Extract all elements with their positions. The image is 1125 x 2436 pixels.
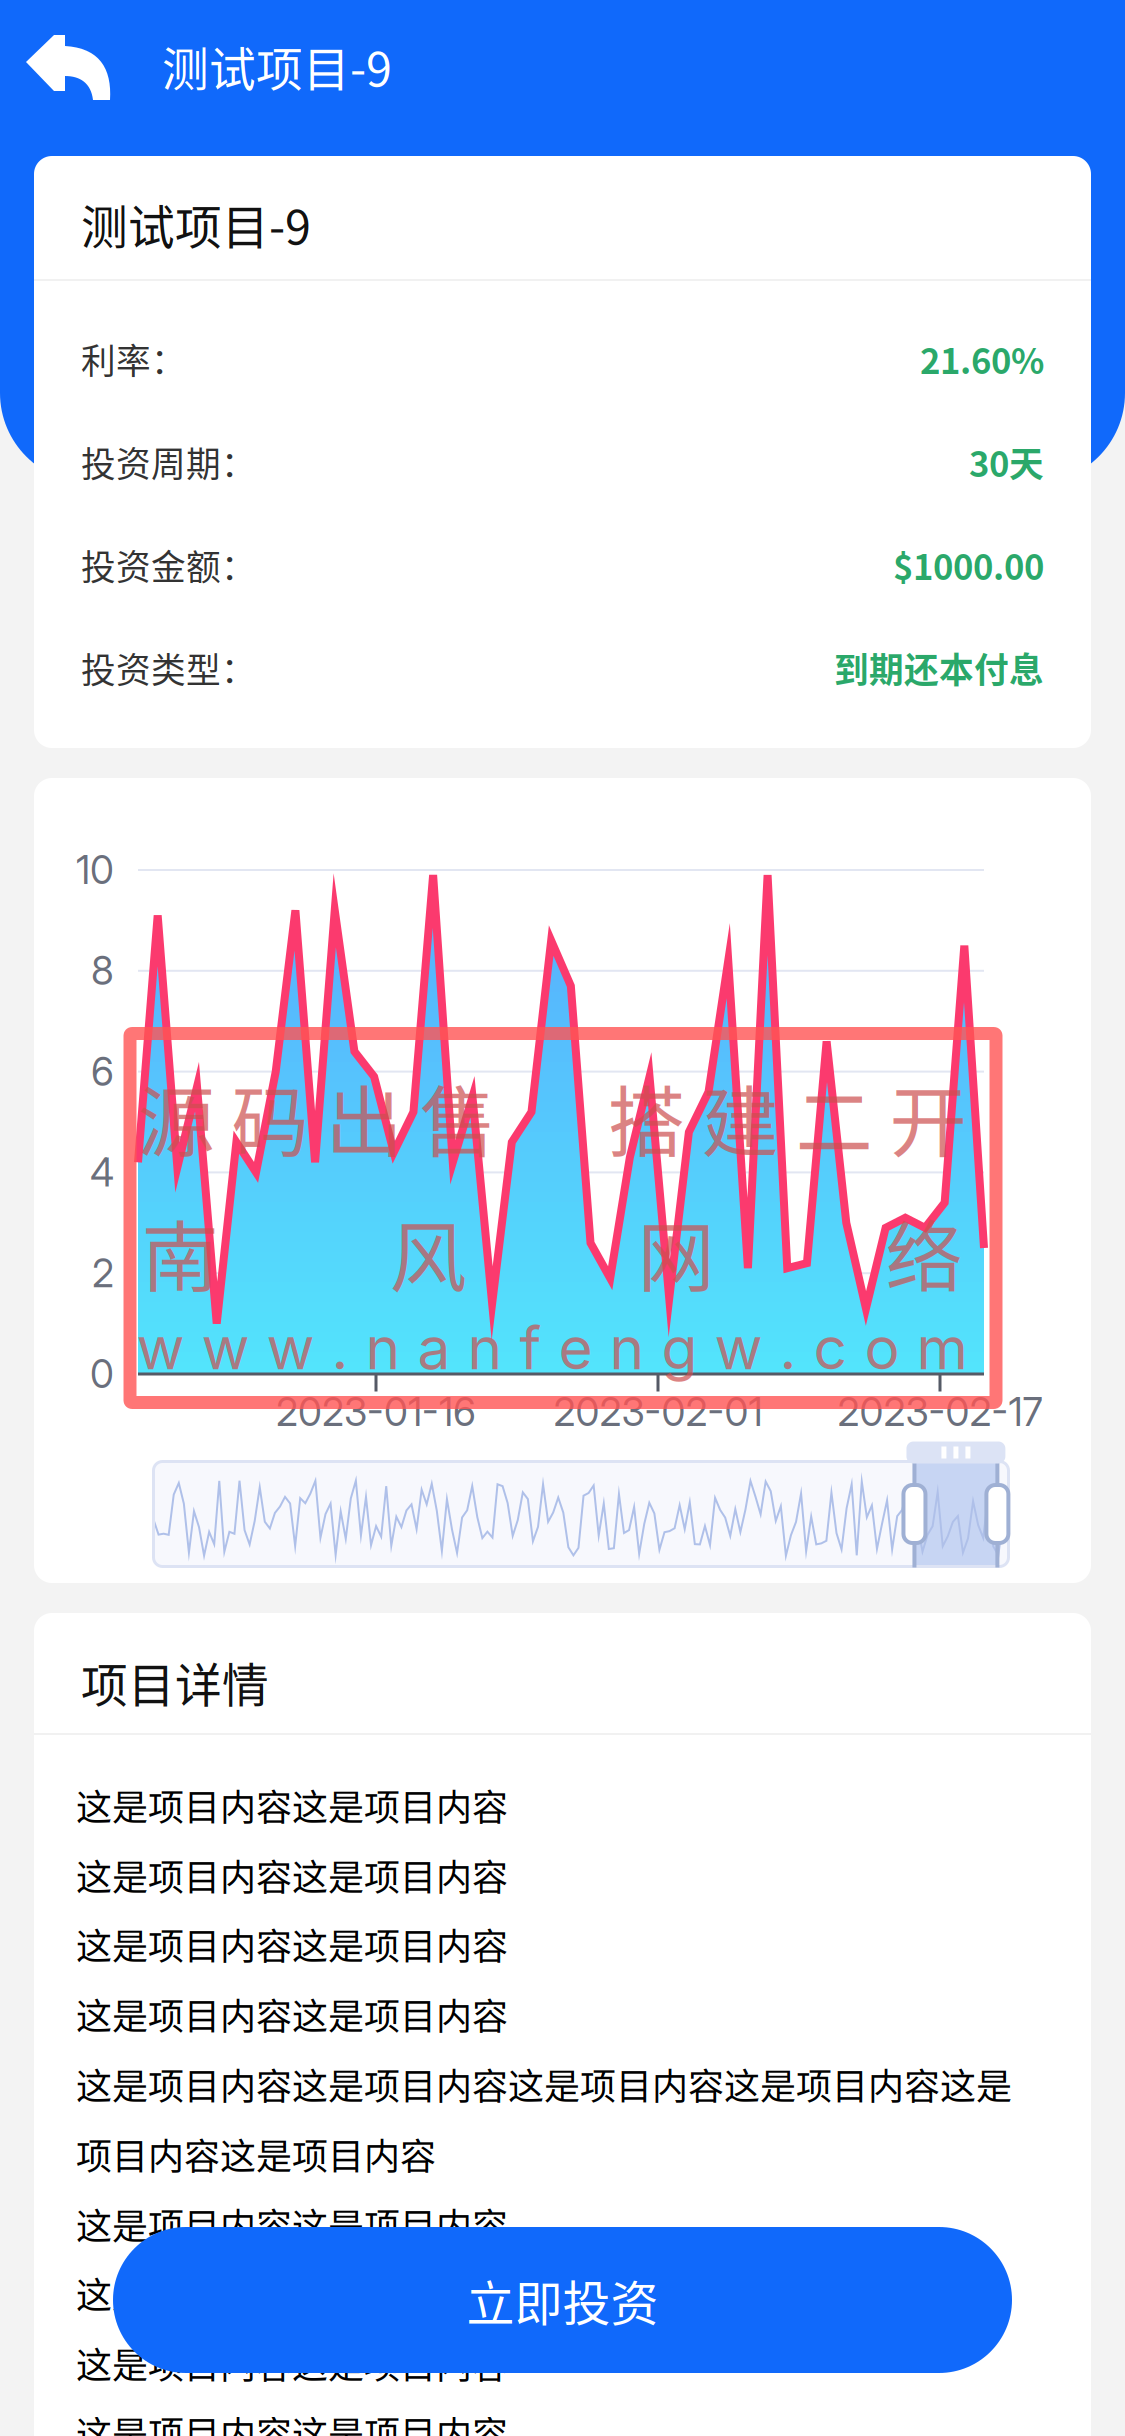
staticText: 项目内容这是项目内容 [76, 2128, 436, 2180]
staticText: 2023-01-16 [276, 1389, 476, 1435]
button[interactable]: 立即投资 [113, 2227, 1012, 2373]
staticText: 8 [91, 947, 114, 994]
staticText: 21.60% [920, 334, 1044, 384]
staticText: 这是项目内容这是项目内容 [76, 2406, 508, 2436]
staticText: w w w . n a n f e n g w . c o m [136, 1312, 967, 1383]
staticText: 4 [90, 1149, 114, 1196]
staticText: 0 [90, 1351, 114, 1397]
staticText: 这是项目内容这是项目内容 [76, 2198, 508, 2250]
staticText: 这是项目内容这是项目内容 [76, 1779, 508, 1831]
staticText: 6 [91, 1048, 114, 1095]
staticText: 利率： [81, 334, 186, 384]
staticText: 这是项目内容这是项目内容 [76, 1988, 508, 2040]
staticText: 南 风 网 络 [141, 1196, 962, 1308]
staticText: 到期还本付息 [834, 643, 1044, 693]
staticText: 这是项目内容这是项目内容这是项目内容这是项目内容这是 [76, 2058, 1012, 2110]
staticText: 投资周期： [81, 437, 256, 487]
staticText: 立即投资 [466, 2265, 658, 2335]
staticText: 这是项目内容这是项目内容 [76, 2267, 508, 2319]
staticText: $1000.00 [893, 540, 1044, 590]
button[interactable]: Back [0, 0, 144, 138]
staticText: 测试项目-9 [162, 32, 392, 100]
staticText: 测试项目-9 [81, 190, 311, 258]
staticText: 投资金额： [81, 540, 256, 590]
staticText: 项目详情 [81, 1648, 269, 1716]
staticText: 2023-02-01 [553, 1389, 762, 1435]
staticText: 这是项目内容这是项目内容 [76, 1849, 508, 1901]
staticText: 10 [76, 847, 114, 893]
staticText: 这是项目内容这是项目内容 [76, 1918, 508, 1970]
staticText: 投资类型： [81, 643, 256, 693]
staticText: 源 码 出 售 搭 建 二 开 [137, 1061, 966, 1173]
staticText: 30天 [969, 437, 1044, 487]
staticText: 2 [92, 1250, 114, 1297]
staticText: 这是项目内容这是项目内容 [76, 2337, 508, 2389]
staticText: 2023-02-17 [837, 1389, 1042, 1435]
